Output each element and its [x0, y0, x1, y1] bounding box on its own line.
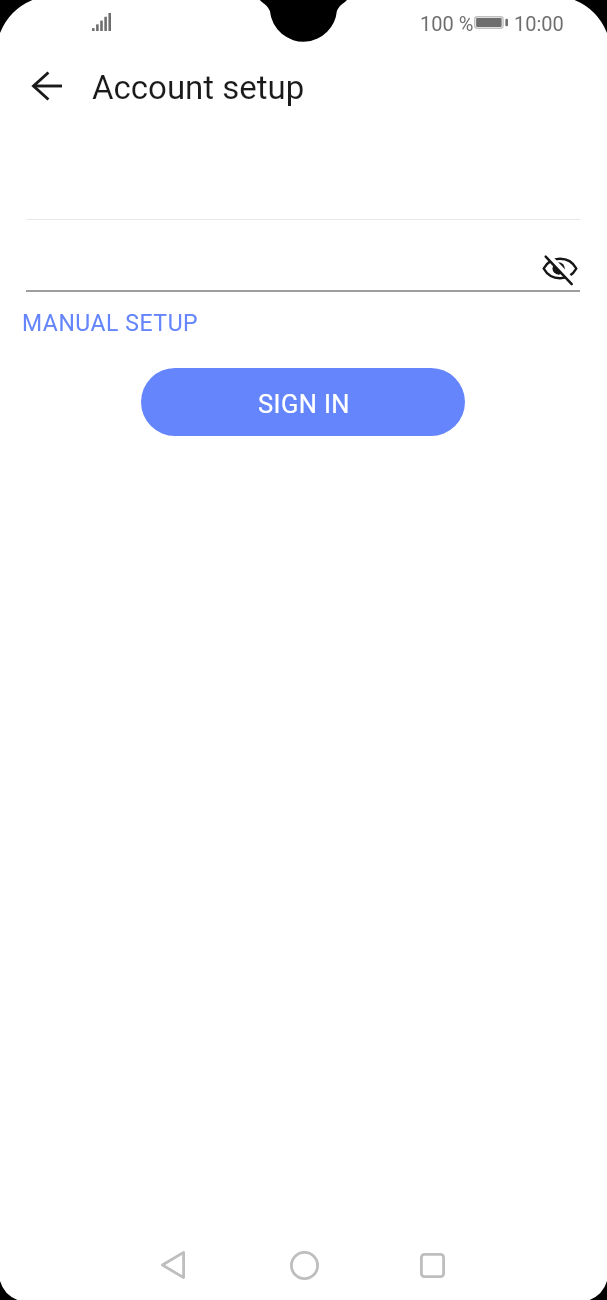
- staticText: 100 %: [420, 12, 474, 35]
- button[interactable]: Recent apps: [403, 1236, 461, 1294]
- button[interactable]: Back: [20, 59, 74, 113]
- staticText: MANUAL SETUP: [22, 310, 199, 337]
- button[interactable]: Password field: [26, 231, 580, 292]
- staticText: 10:00: [514, 12, 564, 35]
- button[interactable]: Show password: [537, 245, 583, 291]
- staticText: SIGN IN: [258, 389, 350, 419]
- staticText: Account setup: [92, 68, 305, 107]
- button[interactable]: MANUAL SETUP: [16, 305, 205, 342]
- button[interactable]: Back: [144, 1236, 202, 1294]
- button[interactable]: SIGN IN: [141, 368, 465, 436]
- button[interactable]: Home: [275, 1236, 333, 1294]
